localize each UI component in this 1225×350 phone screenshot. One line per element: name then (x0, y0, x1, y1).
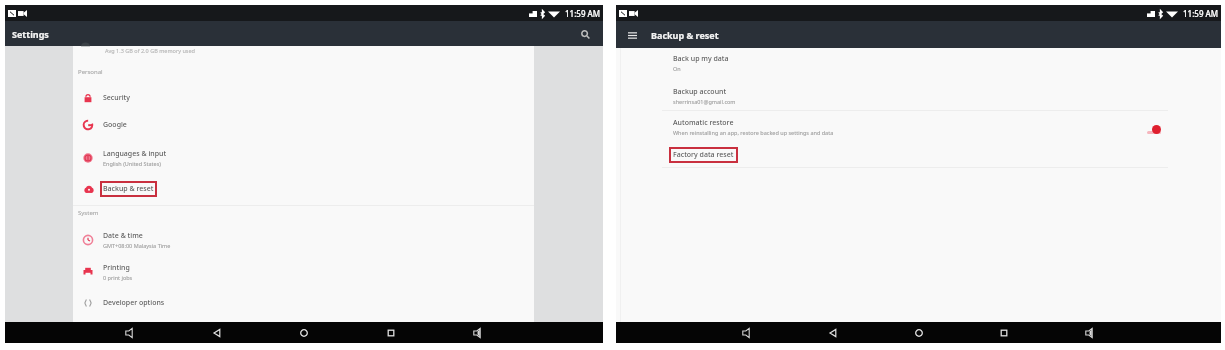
staticText: Date & time (103, 231, 143, 241)
button[interactable]: Languages & input (73, 147, 534, 169)
staticText: On (673, 65, 681, 72)
staticText: Backup & reset (103, 184, 154, 194)
staticText: Factory data reset (673, 150, 734, 160)
button[interactable]: Search (576, 25, 594, 43)
staticText: 11:59 AM (565, 8, 601, 19)
button[interactable]: Security (73, 87, 534, 109)
staticText: When reinstalling an app, restore backed… (673, 129, 834, 136)
button[interactable]: Automatic restore toggle (1147, 120, 1167, 134)
staticText: Security (103, 93, 130, 103)
button[interactable]: Printing (73, 261, 534, 283)
staticText: System (78, 209, 99, 217)
button[interactable]: Volume down (738, 324, 756, 342)
button[interactable]: Automatic restore (616, 111, 1221, 143)
button[interactable]: Back up my data (616, 47, 1221, 79)
button[interactable]: Backup & reset (73, 178, 534, 200)
staticText: Languages & input (103, 149, 167, 159)
button[interactable]: Volume up (469, 324, 487, 342)
staticText: Settings (12, 28, 49, 40)
staticText: Back up my data (673, 54, 729, 64)
button[interactable]: Menu (624, 27, 640, 43)
staticText: Personal (78, 68, 103, 76)
staticText: 0 print jobs (103, 274, 133, 281)
button[interactable]: Home (910, 324, 928, 342)
staticText: sherrinsa01@gmail.com (673, 98, 736, 105)
button[interactable]: Factory data reset (616, 144, 1221, 166)
staticText: Printing (103, 263, 130, 273)
button[interactable]: Recents (995, 324, 1013, 342)
staticText: Automatic restore (673, 118, 734, 128)
staticText: Google (103, 120, 127, 130)
button[interactable]: Developer options (73, 292, 534, 314)
staticText: 11:59 AM (1183, 8, 1219, 19)
button[interactable]: Back (824, 324, 842, 342)
button[interactable]: Volume down (121, 324, 139, 342)
staticText: Backup & reset (651, 29, 719, 41)
button[interactable]: Back (208, 324, 226, 342)
button[interactable]: Volume up (1081, 324, 1099, 342)
button[interactable]: Date & time (73, 229, 534, 251)
staticText: GMT+08:00 Malaysia Time (103, 242, 171, 249)
staticText: Developer options (103, 298, 165, 308)
button[interactable]: Recents (382, 324, 400, 342)
button[interactable]: Backup account (616, 80, 1221, 112)
staticText: English (United States) (103, 160, 161, 167)
button[interactable]: Home (295, 324, 313, 342)
staticText: Backup account (673, 87, 727, 97)
button[interactable]: Google (73, 114, 534, 136)
staticText: Avg 1.3 GB of 2.0 GB memory used (105, 47, 195, 54)
